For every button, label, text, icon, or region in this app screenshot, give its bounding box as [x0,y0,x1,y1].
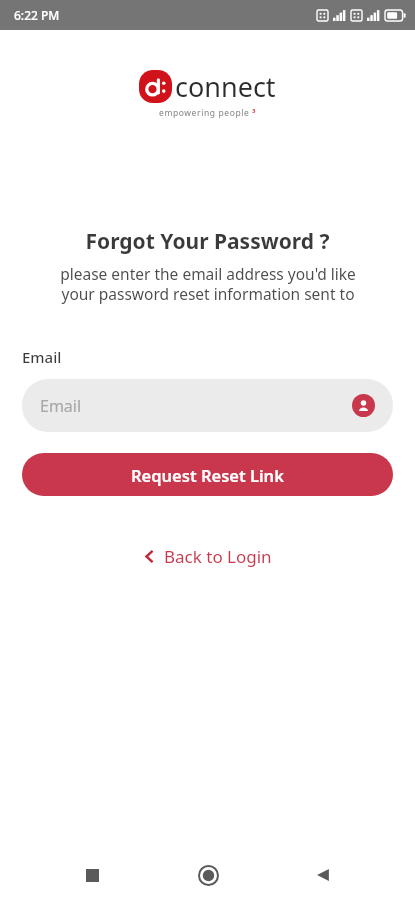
staticText: Forgot Your Password ? [85,227,330,256]
staticText: Back to Login [164,545,272,568]
button[interactable]: Back [299,851,347,899]
staticText: Email [40,395,82,417]
button[interactable]: Recent apps [68,851,116,899]
button[interactable]: Email [22,379,393,432]
staticText: connect [175,68,276,105]
staticText: 3 [252,107,256,115]
button[interactable]: Home [184,851,232,899]
other: User [352,394,375,417]
button[interactable]: Request Reset Link [22,453,393,496]
button[interactable]: Back to Login [130,539,286,574]
staticText: Email [22,347,62,367]
staticText: Request Reset Link [131,464,284,486]
staticText: 6:22 PM [14,7,60,23]
staticText: please enter the email address you'd lik… [60,263,356,305]
staticText: empowering people [159,107,250,119]
